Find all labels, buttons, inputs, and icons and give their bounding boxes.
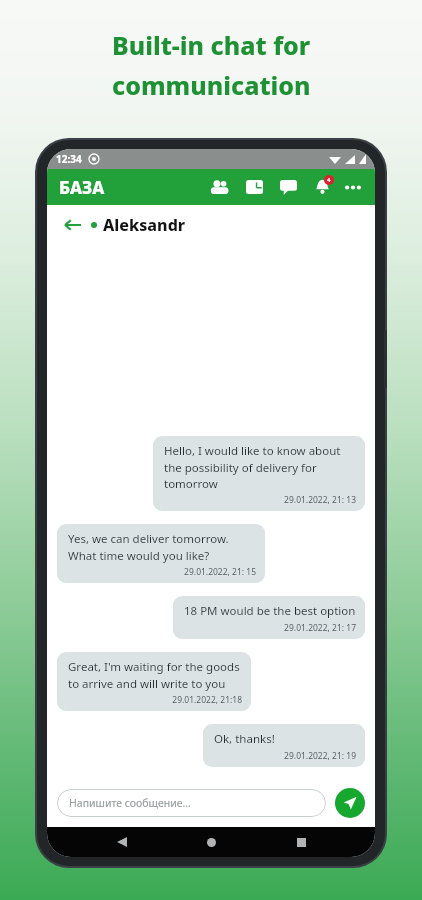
- staticText: Built-in chat for: [112, 28, 311, 62]
- staticText: 18 PM would be the best option: [184, 603, 356, 619]
- button[interactable]: Send message: [335, 788, 365, 818]
- staticText: 29.01.2022, 21: 15: [68, 566, 256, 578]
- button[interactable]: Orders: [241, 174, 267, 200]
- staticText: Yes, we can deliver tomorrow. What time …: [68, 531, 256, 563]
- button[interactable]: Great, I'm waiting for the goods to arri…: [57, 652, 251, 711]
- button[interactable]: Contacts: [207, 174, 233, 200]
- staticText: communication: [112, 68, 311, 102]
- button[interactable]: Yes, we can deliver tomorrow. What time …: [57, 524, 265, 583]
- staticText: 29.01.2022, 21: 19: [214, 750, 356, 762]
- staticText: Напишите сообщение...: [69, 796, 191, 810]
- staticText: Aleksandr: [103, 214, 186, 236]
- button[interactable]: Ok, thanks!: [203, 724, 365, 767]
- button[interactable]: Chats: [275, 174, 301, 200]
- button[interactable]: 18 PM would be the best option: [173, 596, 365, 639]
- button[interactable]: Hello, I would like to know about the po…: [153, 436, 365, 511]
- staticText: Ok, thanks!: [214, 731, 275, 747]
- button[interactable]: Recent apps: [286, 827, 316, 857]
- staticText: 29.01.2022, 21:18: [68, 694, 242, 706]
- staticText: Great, I'm waiting for the goods to arri…: [68, 659, 242, 691]
- button[interactable]: Home: [196, 827, 226, 857]
- staticText: 29.01.2022, 21: 13: [164, 494, 356, 506]
- staticText: 4: [327, 176, 331, 184]
- staticText: 12:34: [56, 152, 82, 166]
- staticText: 29.01.2022, 21: 17: [184, 622, 356, 634]
- button[interactable]: Notifications: [309, 174, 335, 200]
- button[interactable]: Back: [61, 214, 83, 236]
- button[interactable]: Back: [107, 827, 137, 857]
- staticText: БАЗА: [59, 176, 105, 199]
- staticText: Hello, I would like to know about the po…: [164, 443, 356, 491]
- button[interactable]: More options: [341, 175, 365, 199]
- button[interactable]: Напишите сообщение...: [57, 789, 326, 817]
